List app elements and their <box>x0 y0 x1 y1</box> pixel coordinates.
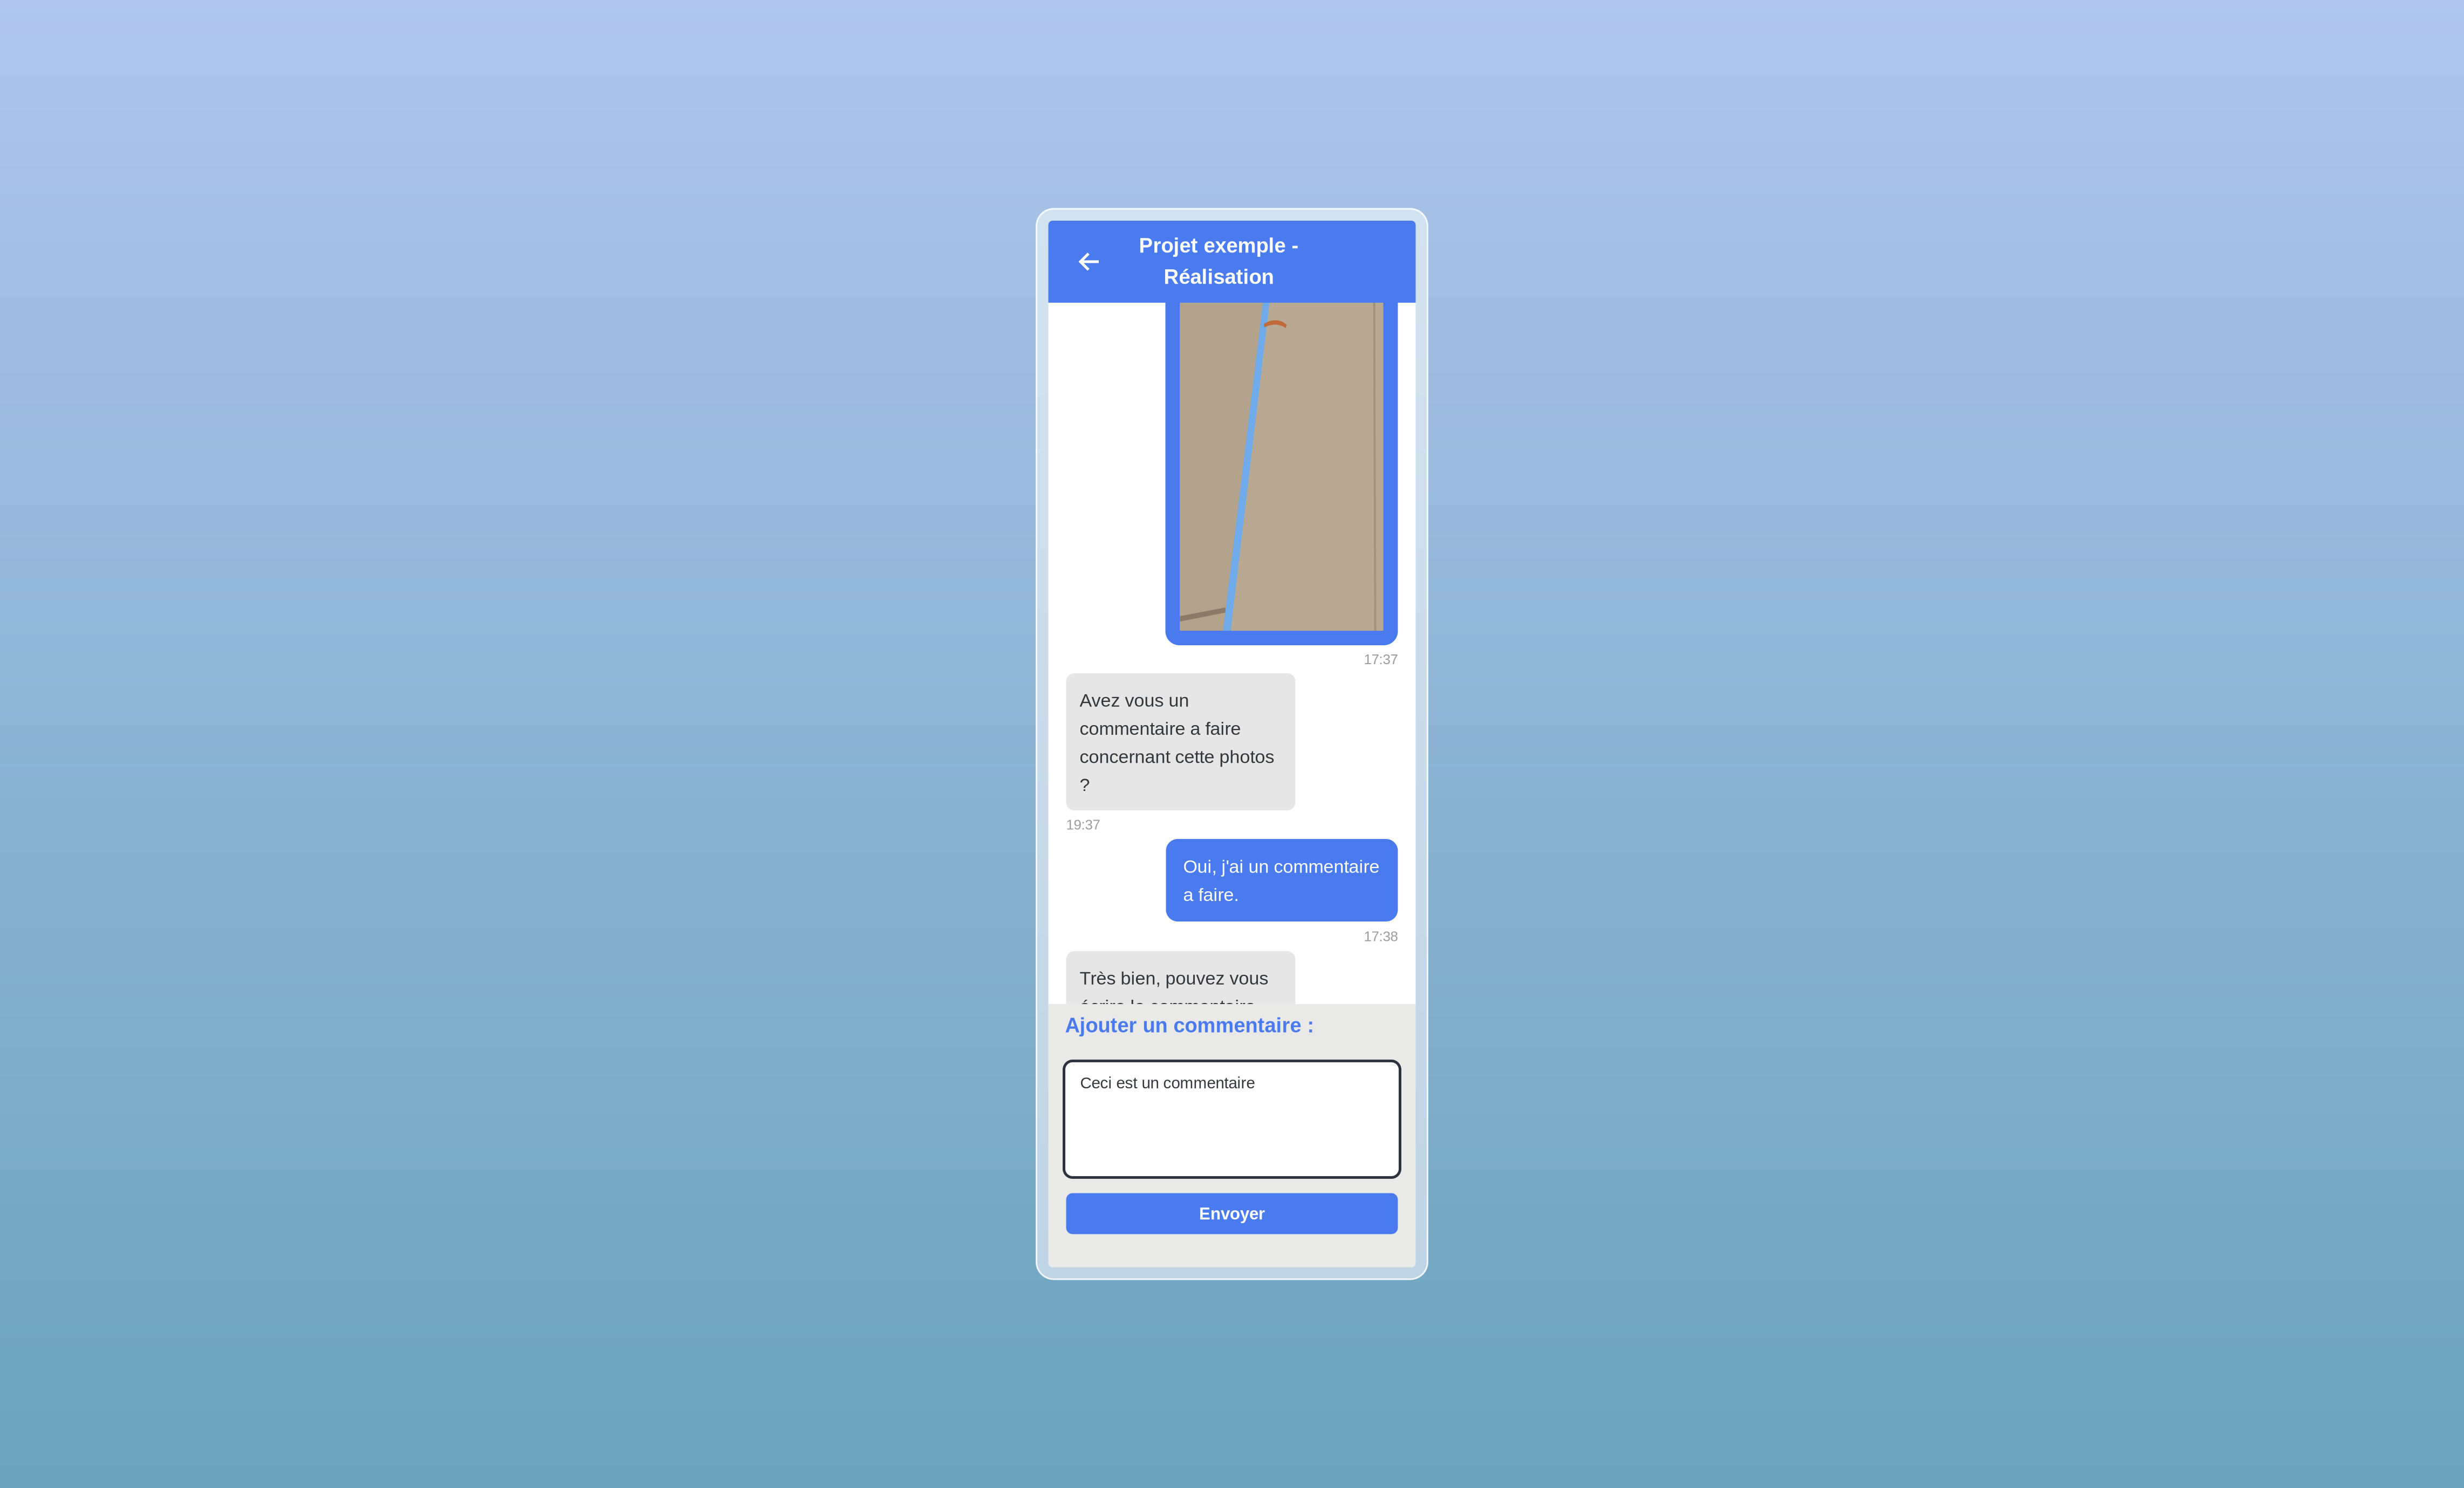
staticText: 17:38 <box>1364 929 1398 944</box>
staticText: Projet exemple - <box>1139 234 1299 257</box>
button[interactable]: Envoyer <box>1066 1193 1398 1234</box>
staticText: 17:37 <box>1364 652 1398 667</box>
staticText: Avez vous un commentaire a faire concern… <box>1080 690 1274 795</box>
staticText: Ceci est un commentaire <box>1080 1074 1255 1092</box>
staticText: Réalisation <box>1164 265 1274 288</box>
staticText: Très bien, pouvez vous écrire le comment… <box>1080 968 1268 1017</box>
staticText: Oui, j'ai un commentaire a faire. <box>1183 856 1380 905</box>
staticText: 19:37 <box>1066 817 1100 832</box>
staticText: Ajouter un commentaire : <box>1065 1014 1314 1037</box>
button[interactable]: Retour <box>1048 221 1131 303</box>
staticText: Envoyer <box>1199 1204 1265 1223</box>
